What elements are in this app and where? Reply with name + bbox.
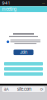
button[interactable]	[4, 67, 43, 71]
staticText: 9:41	[2, 1, 10, 5]
staticText: Join	[20, 50, 27, 55]
button[interactable]	[4, 62, 43, 65]
staticText: ···	[42, 1, 45, 5]
staticText: site.com	[17, 87, 32, 92]
staticText: aA	[4, 87, 9, 92]
staticText: ⟳	[40, 87, 43, 92]
button[interactable]: Join	[13, 49, 33, 55]
button[interactable]	[4, 72, 43, 76]
staticText: meeting	[2, 7, 16, 12]
